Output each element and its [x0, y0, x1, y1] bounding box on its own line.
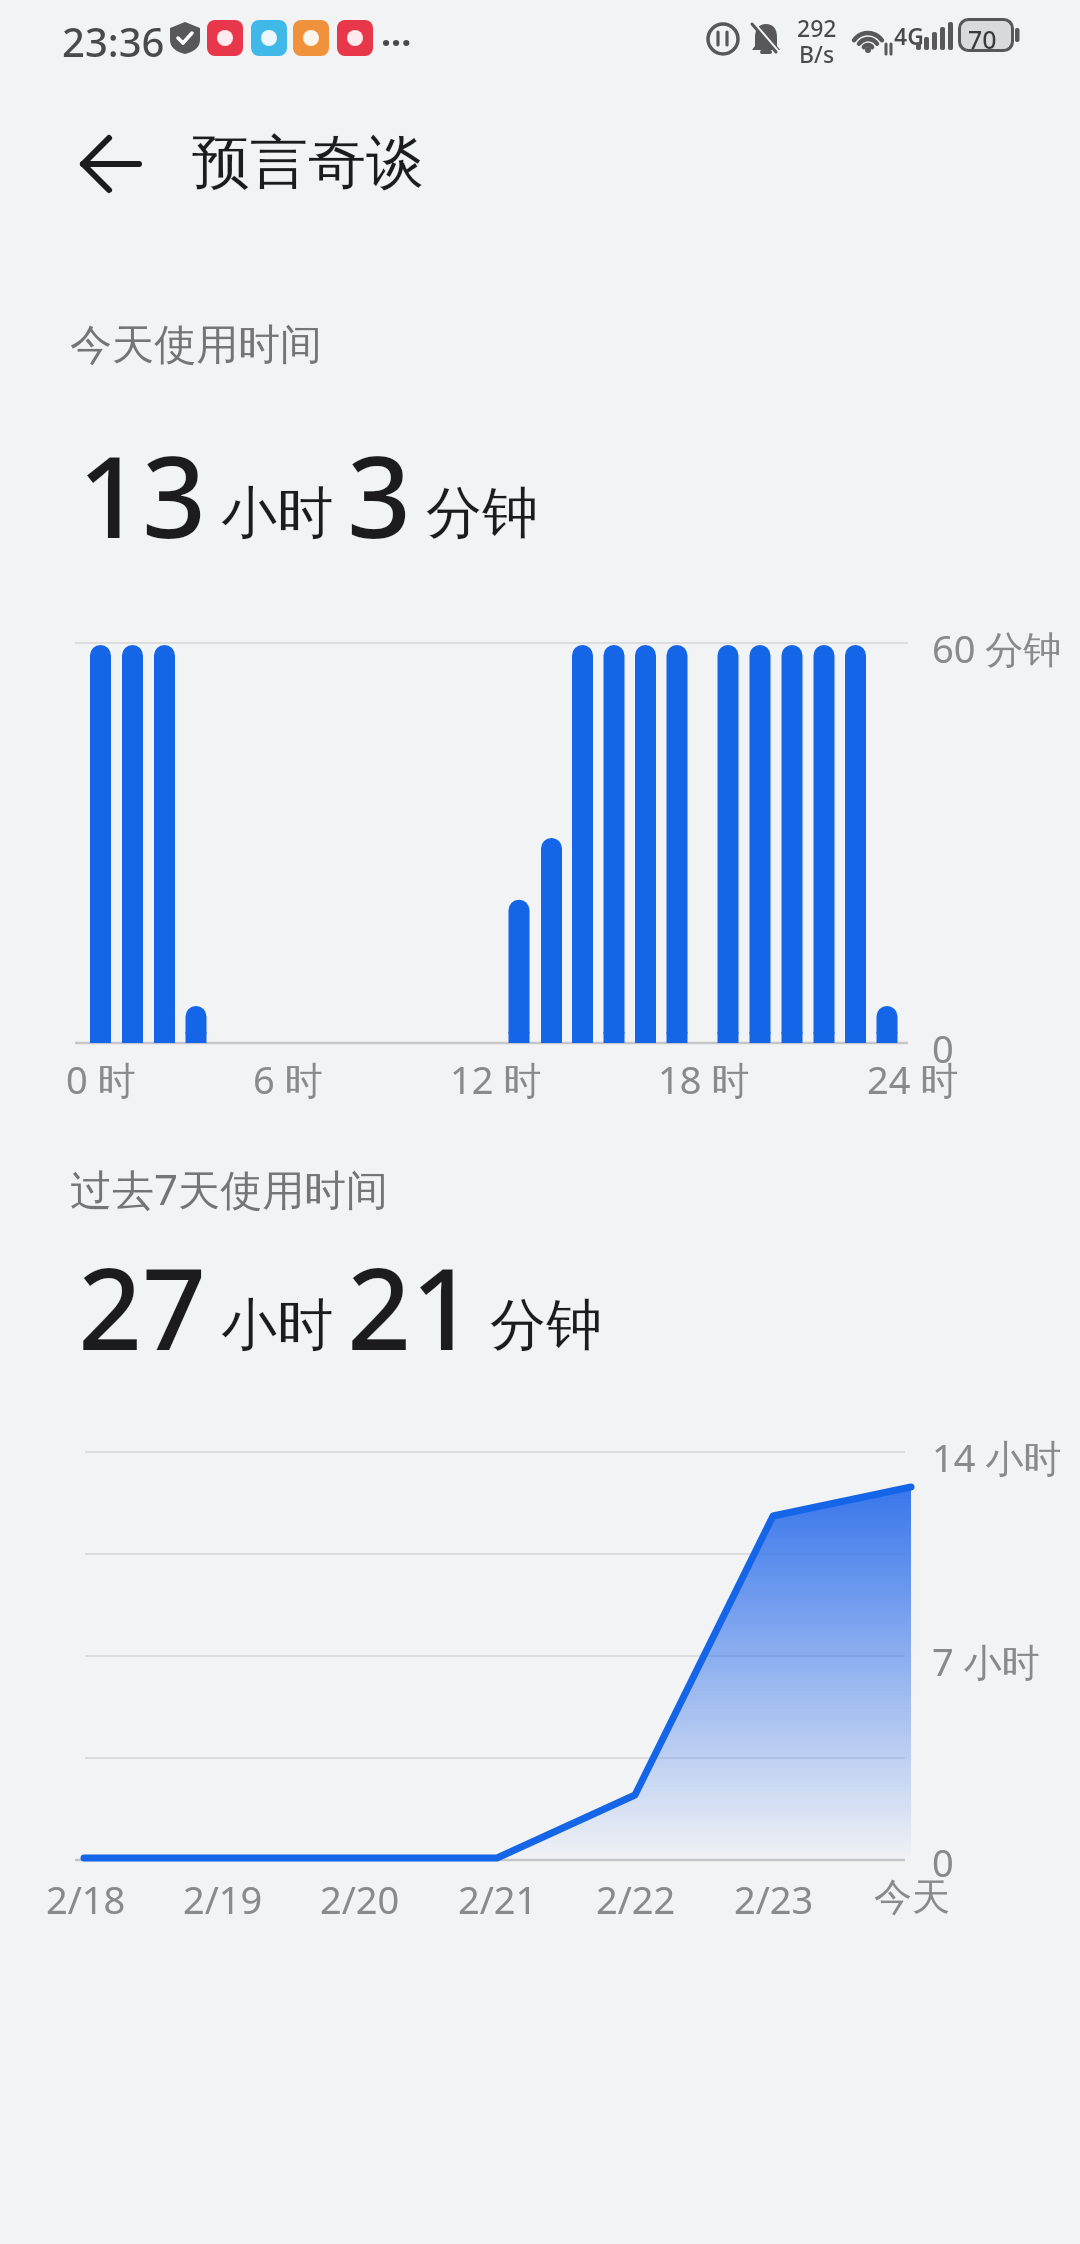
- staticText: 2/20: [320, 1873, 400, 1925]
- staticText: 70: [968, 22, 997, 56]
- staticText: 2/22: [596, 1873, 676, 1925]
- staticText: 分钟: [426, 478, 538, 549]
- staticText: 6 时: [253, 1053, 323, 1105]
- staticText: B/s: [799, 38, 835, 69]
- staticText: 13: [78, 418, 207, 571]
- staticText: 2/23: [734, 1873, 814, 1925]
- staticText: 今天使用时间: [70, 319, 322, 372]
- staticText: 分钟: [490, 1290, 602, 1361]
- staticText: 18 时: [658, 1053, 750, 1105]
- staticText: 小时: [221, 478, 333, 549]
- staticText: 预言奇谈: [192, 126, 424, 199]
- staticText: 2/19: [183, 1873, 263, 1925]
- button[interactable]: [66, 128, 156, 200]
- staticText: 60 分钟: [932, 622, 1062, 674]
- staticText: 2/18: [46, 1873, 126, 1925]
- staticText: 21: [347, 1230, 476, 1383]
- staticText: ···: [381, 18, 412, 67]
- staticText: 12 时: [450, 1053, 542, 1105]
- staticText: 24 时: [867, 1053, 959, 1105]
- staticText: 过去7天使用时间: [70, 1160, 389, 1217]
- staticText: 0: [932, 1022, 954, 1074]
- staticText: 3: [347, 418, 412, 571]
- staticText: 292: [797, 12, 837, 43]
- staticText: 小时: [221, 1290, 333, 1361]
- staticText: 14 小时: [932, 1431, 1062, 1483]
- staticText: 27: [78, 1230, 207, 1383]
- staticText: 7 小时: [932, 1635, 1040, 1687]
- staticText: 今天: [874, 1873, 950, 1921]
- staticText: 4G: [894, 20, 924, 51]
- staticText: 23:36: [62, 14, 165, 68]
- staticText: 2/21: [458, 1873, 538, 1925]
- staticText: 0 时: [66, 1053, 136, 1105]
- staticText: 0: [932, 1836, 954, 1888]
